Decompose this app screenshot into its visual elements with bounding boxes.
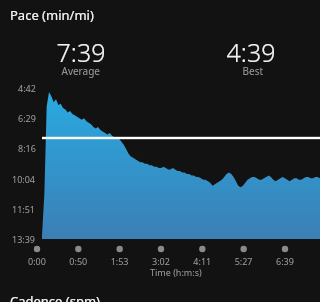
button[interactable]: Pace chart — [0, 0, 320, 302]
